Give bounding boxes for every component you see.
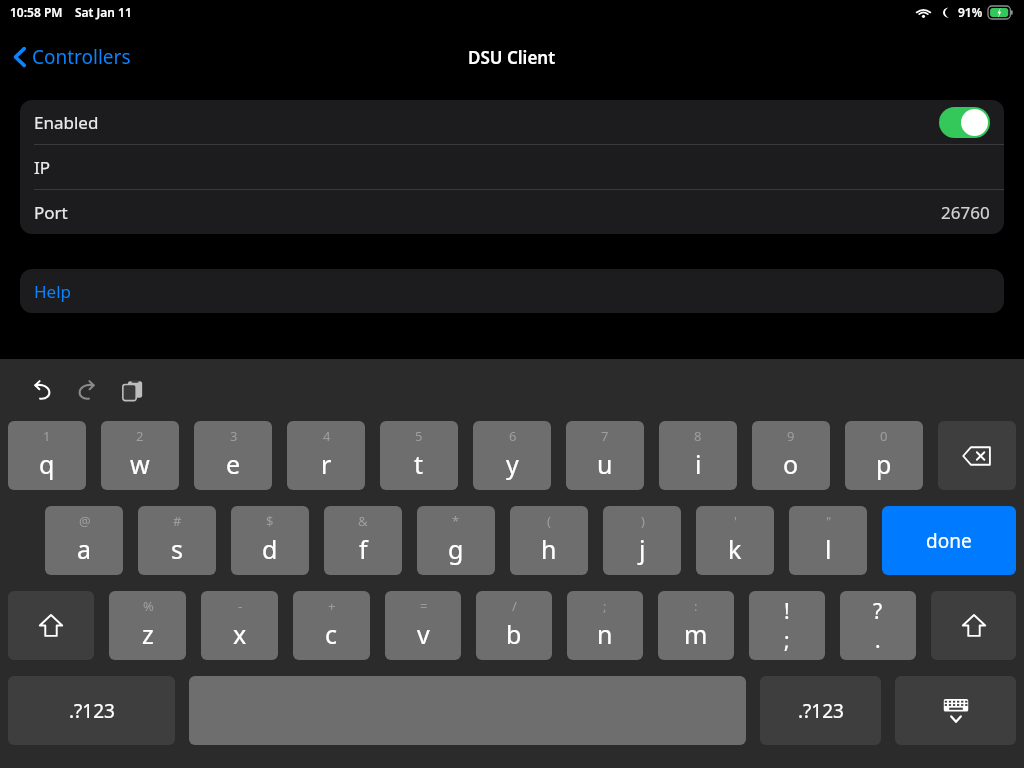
button[interactable]: Controllers: [8, 38, 137, 76]
button[interactable]: 2: [101, 421, 179, 490]
staticText: 10:58 PM: [10, 4, 63, 20]
button[interactable]: 4: [287, 421, 365, 490]
staticText: $: [266, 512, 274, 530]
button[interactable]: ): [603, 506, 681, 575]
staticText: =: [420, 597, 428, 615]
staticText: Help: [34, 280, 72, 303]
staticText: f: [359, 532, 368, 566]
staticText: w: [130, 447, 150, 481]
button[interactable]: 6: [473, 421, 551, 490]
staticText: e: [226, 447, 241, 481]
button[interactable]: Backspace: [938, 421, 1016, 490]
staticText: 3: [230, 427, 238, 445]
button[interactable]: Enabled: [20, 100, 1004, 144]
staticText: #: [173, 512, 182, 530]
staticText: 8: [694, 427, 702, 445]
button[interactable]: Help: [20, 269, 1004, 313]
button[interactable]: *: [417, 506, 495, 575]
button[interactable]: ;: [567, 591, 643, 660]
staticText: x: [233, 617, 247, 651]
button[interactable]: #: [138, 506, 216, 575]
button[interactable]: 0: [845, 421, 923, 490]
button[interactable]: .?123: [8, 676, 175, 745]
button[interactable]: Port: [20, 190, 1004, 234]
button[interactable]: :: [658, 591, 734, 660]
staticText: k: [728, 532, 742, 566]
staticText: 6: [509, 427, 517, 445]
button[interactable]: 1: [8, 421, 86, 490]
button[interactable]: Shift: [931, 591, 1016, 660]
button[interactable]: =: [385, 591, 461, 660]
staticText: /: [512, 597, 517, 615]
staticText: -: [238, 597, 243, 615]
button[interactable]: IP: [20, 145, 1004, 189]
button[interactable]: Redo: [67, 370, 107, 410]
button[interactable]: Hide keyboard: [895, 676, 1016, 745]
button[interactable]: @: [45, 506, 123, 575]
staticText: 9: [787, 427, 795, 445]
button[interactable]: &: [324, 506, 402, 575]
button[interactable]: 3: [194, 421, 272, 490]
staticText: .?123: [798, 698, 844, 724]
staticText: (: [547, 512, 551, 530]
staticText: d: [262, 532, 278, 566]
button[interactable]: ?: [840, 591, 916, 660]
staticText: 91%: [958, 4, 983, 20]
staticText: 2: [136, 427, 144, 445]
button[interactable]: done: [882, 506, 1016, 575]
staticText: :: [694, 597, 698, 615]
button[interactable]: $: [231, 506, 309, 575]
staticText: IP: [34, 156, 51, 179]
button[interactable]: 8: [659, 421, 737, 490]
staticText: l: [825, 532, 832, 566]
staticText: v: [417, 617, 430, 651]
staticText: Enabled: [34, 111, 99, 134]
button[interactable]: /: [476, 591, 552, 660]
staticText: q: [39, 447, 55, 481]
staticText: &: [358, 512, 368, 530]
staticText: DSU Client: [468, 46, 556, 69]
staticText: ?: [873, 597, 883, 626]
button[interactable]: +: [293, 591, 370, 660]
staticText: !: [784, 597, 790, 626]
button[interactable]: 5: [380, 421, 458, 490]
staticText: ): [641, 512, 645, 530]
button[interactable]: Enabled toggle: [939, 107, 990, 138]
button[interactable]: -: [201, 591, 278, 660]
button[interactable]: (: [510, 506, 588, 575]
staticText: %: [143, 597, 154, 615]
staticText: c: [325, 617, 338, 651]
staticText: j: [639, 532, 646, 566]
button[interactable]: 9: [752, 421, 830, 490]
button[interactable]: %: [109, 591, 186, 660]
button[interactable]: ": [789, 506, 867, 575]
staticText: s: [171, 532, 183, 566]
staticText: 4: [323, 427, 331, 445]
button[interactable]: Paste: [112, 370, 152, 410]
button[interactable]: ': [696, 506, 774, 575]
staticText: b: [506, 617, 522, 651]
staticText: r: [321, 447, 332, 481]
staticText: Sat Jan 11: [75, 4, 132, 20]
staticText: t: [414, 447, 424, 481]
staticText: done: [926, 528, 972, 554]
staticText: g: [448, 532, 464, 566]
staticText: 5: [415, 427, 423, 445]
staticText: a: [77, 532, 92, 566]
staticText: ': [734, 512, 737, 530]
button[interactable]: Undo: [22, 370, 62, 410]
staticText: Controllers: [32, 44, 131, 70]
button[interactable]: .?123: [760, 676, 881, 745]
staticText: 26760: [941, 201, 990, 224]
staticText: .: [875, 626, 881, 655]
button[interactable]: Shift: [8, 591, 94, 660]
staticText: ": [826, 512, 832, 530]
staticText: 1: [43, 427, 51, 445]
staticText: p: [876, 447, 892, 481]
staticText: y: [506, 447, 519, 481]
staticText: 7: [601, 427, 609, 445]
staticText: o: [783, 447, 799, 481]
button[interactable]: 7: [566, 421, 644, 490]
button[interactable]: !: [749, 591, 825, 660]
